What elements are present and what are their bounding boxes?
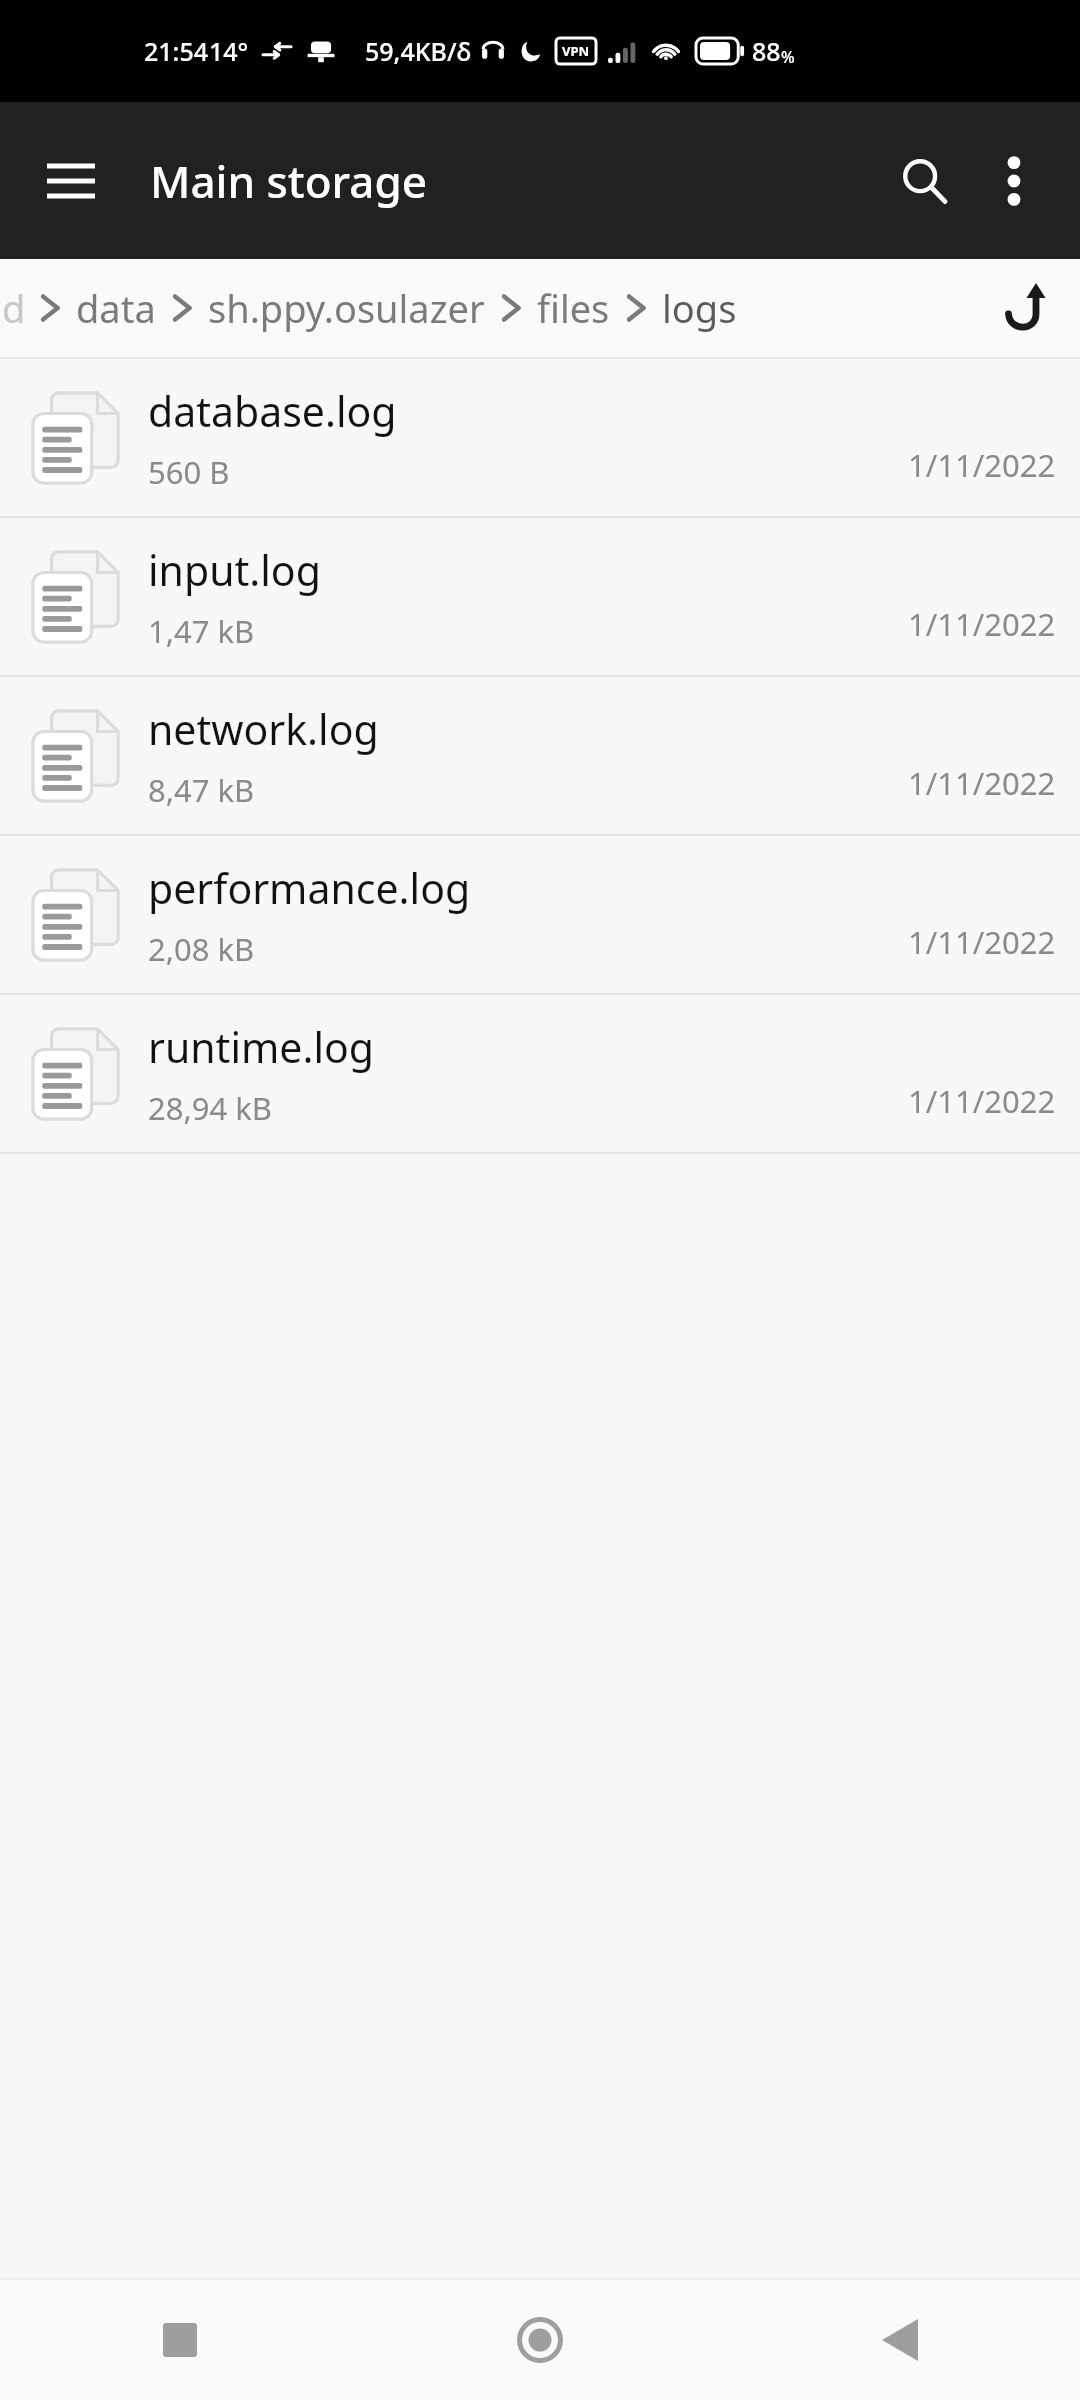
button[interactable]: sh.ppy.osulazer	[206, 282, 487, 334]
staticText: 1/11/2022	[908, 444, 1056, 486]
button[interactable]: Open navigation drawer	[28, 138, 114, 224]
button[interactable]: logs	[660, 282, 739, 334]
staticText: 1/11/2022	[908, 603, 1056, 645]
staticText: 21:54	[144, 34, 209, 68]
button[interactable]: Search	[878, 135, 970, 227]
button[interactable]: network.log	[0, 677, 1080, 834]
staticText: performance.log	[148, 860, 471, 916]
staticText: 88	[752, 34, 781, 68]
staticText: 1,47 kB	[148, 610, 255, 652]
staticText: sh.ppy.osulazer	[208, 282, 485, 334]
staticText: data	[76, 282, 156, 334]
button[interactable]: Go up one level	[978, 265, 1064, 351]
button[interactable]: data	[74, 282, 158, 334]
staticText: runtime.log	[148, 1019, 375, 1075]
staticText: 14°	[209, 34, 249, 68]
staticText: network.log	[148, 701, 379, 757]
button[interactable]: Back	[720, 2280, 1080, 2400]
staticText: 59,4KB/δ	[365, 34, 472, 68]
staticText: database.log	[148, 383, 397, 439]
button[interactable]: runtime.log	[0, 995, 1080, 1152]
button[interactable]: More options	[970, 137, 1058, 225]
staticText: input.log	[148, 542, 321, 598]
button[interactable]: files	[535, 282, 612, 334]
staticText: 8,47 kB	[148, 769, 255, 811]
staticText: d	[2, 282, 26, 334]
staticText: 28,94 kB	[148, 1087, 272, 1129]
staticText: 1/11/2022	[908, 762, 1056, 804]
staticText: 1/11/2022	[908, 921, 1056, 963]
button[interactable]: Home	[360, 2280, 720, 2400]
staticText: logs	[662, 282, 737, 334]
staticText: %	[781, 46, 795, 68]
button[interactable]: input.log	[0, 518, 1080, 675]
button[interactable]: database.log	[0, 359, 1080, 516]
staticText: files	[537, 282, 610, 334]
staticText: 560 B	[148, 451, 230, 493]
staticText: 1/11/2022	[908, 1080, 1056, 1122]
button[interactable]: performance.log	[0, 836, 1080, 993]
staticText: 2,08 kB	[148, 928, 255, 970]
staticText: Main storage	[150, 151, 878, 211]
staticText: VPN	[562, 42, 590, 60]
button[interactable]: Recent apps	[0, 2280, 360, 2400]
